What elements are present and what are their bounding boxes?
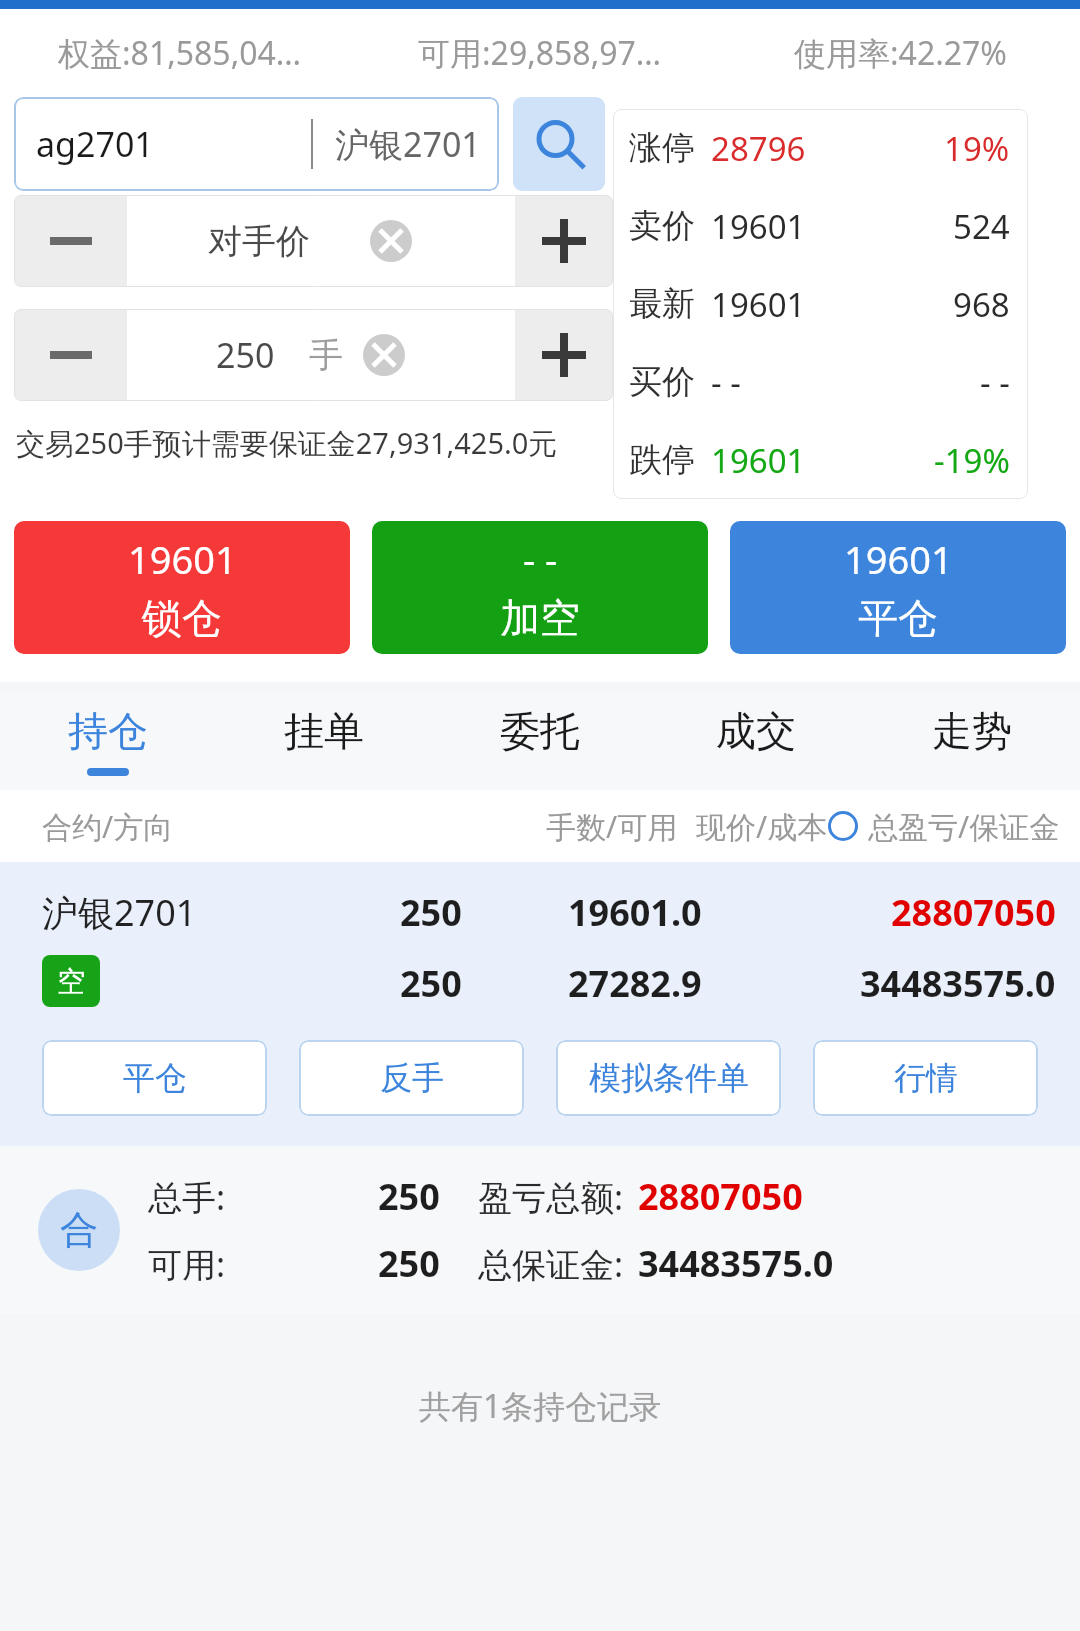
button[interactable]: 模拟条件单 (556, 1040, 781, 1116)
staticText: 买价 (629, 361, 695, 403)
staticText: 968 (953, 282, 1010, 327)
button[interactable]: 250 (127, 309, 515, 401)
staticText: 250 (378, 1239, 440, 1288)
staticText: 平仓 (858, 593, 938, 643)
button[interactable]: 委托 (432, 692, 648, 790)
staticText: 共有1条持仓记录 (419, 1384, 662, 1428)
staticText: 34483575.0 (860, 959, 1056, 1008)
staticText: 250 (216, 332, 275, 378)
staticText: 19601 (844, 533, 953, 585)
staticText: 27282.9 (568, 959, 702, 1008)
staticText: 总保证金: (478, 1241, 624, 1287)
button[interactable]: 19601 (14, 521, 350, 654)
button[interactable]: - - (372, 521, 708, 654)
staticText: 空 (57, 964, 85, 999)
staticText: 加空 (500, 593, 580, 643)
staticText: 19601 (711, 438, 806, 483)
staticText: 走势 (932, 706, 1012, 756)
staticText: 跌停 (629, 439, 695, 481)
button[interactable]: 可用:29,858,97… (360, 9, 720, 97)
staticText: 总手: (148, 1174, 290, 1220)
staticText: 成交 (716, 706, 796, 756)
staticText: 最新 (629, 283, 695, 325)
staticText: 行情 (894, 1058, 958, 1098)
staticText: 沪银2701 (335, 121, 481, 167)
button[interactable]: 权益:81,585,04… (0, 9, 360, 97)
staticText: 权益:81,585,04… (58, 31, 302, 75)
staticText: - - (980, 360, 1010, 405)
staticText: 19601.0 (568, 888, 702, 937)
button[interactable]: 买价 (613, 343, 1028, 421)
button[interactable]: 行情 (813, 1040, 1038, 1116)
staticText: 对手价 (208, 220, 310, 263)
button[interactable]: 成交 (648, 692, 864, 790)
staticText: ag2701 (36, 121, 154, 167)
staticText: 委托 (500, 706, 580, 756)
staticText: 250 (378, 1172, 440, 1221)
button[interactable]: 清除 (363, 334, 405, 376)
button[interactable]: 跌停 (613, 421, 1028, 499)
staticText: 19% (944, 126, 1010, 171)
staticText: 可用: (148, 1241, 290, 1287)
staticText: 可用:29,858,97… (418, 31, 662, 75)
button[interactable]: 对手价 (127, 195, 515, 287)
staticText: 涨停 (629, 127, 695, 169)
staticText: 手数/可用 (546, 806, 678, 847)
button[interactable]: ag2701 (14, 97, 499, 191)
button[interactable]: 增加 (515, 195, 613, 287)
button[interactable]: 涨停 (613, 109, 1028, 187)
button[interactable]: 卖价 (613, 187, 1028, 265)
staticText: 持仓 (68, 706, 148, 756)
staticText: 250 (400, 959, 462, 1008)
button[interactable]: 减少 (14, 309, 127, 401)
staticText: 现价/成本 (696, 806, 828, 847)
staticText: 平仓 (123, 1058, 187, 1098)
staticText: 手 (309, 334, 343, 377)
staticText: 34483575.0 (638, 1239, 834, 1288)
staticText: 28796 (711, 126, 806, 171)
button[interactable]: 反手 (299, 1040, 524, 1116)
staticText: 524 (953, 204, 1010, 249)
staticText: 卖价 (629, 205, 695, 247)
button[interactable]: 走势 (864, 692, 1080, 790)
staticText: 19601 (711, 282, 806, 327)
staticText: 交易250手预计需要保证金27,931,425.0元 (16, 423, 558, 463)
button[interactable]: 19601 (730, 521, 1066, 654)
staticText: 锁仓 (142, 593, 222, 643)
button[interactable]: 持仓 (0, 692, 216, 790)
button[interactable]: 增加 (515, 309, 613, 401)
button[interactable]: 清除 (370, 220, 412, 262)
staticText: 挂单 (284, 706, 364, 756)
staticText: 总盈亏/保证金 (868, 806, 1060, 847)
staticText: 使用率:42.27% (794, 31, 1007, 75)
staticText: 合约/方向 (42, 806, 174, 847)
staticText: 模拟条件单 (589, 1058, 749, 1098)
button[interactable]: 使用率:42.27% (720, 9, 1080, 97)
staticText: -19% (934, 438, 1010, 483)
staticText: 反手 (380, 1058, 444, 1098)
staticText: 合 (60, 1206, 98, 1254)
button[interactable]: 最新 (613, 265, 1028, 343)
staticText: 28807050 (638, 1172, 803, 1221)
staticText: 19601 (128, 533, 237, 585)
staticText: - - (711, 360, 741, 405)
staticText: 28807050 (891, 888, 1056, 937)
staticText: 250 (400, 888, 462, 937)
staticText: 19601 (711, 204, 806, 249)
staticText: - - (523, 533, 558, 585)
staticText: 沪银2701 (42, 888, 197, 937)
button[interactable]: 挂单 (216, 692, 432, 790)
button[interactable]: 减少 (14, 195, 127, 287)
button[interactable]: 搜索 (513, 97, 605, 191)
button[interactable]: 平仓 (42, 1040, 267, 1116)
staticText: 盈亏总额: (478, 1174, 624, 1220)
